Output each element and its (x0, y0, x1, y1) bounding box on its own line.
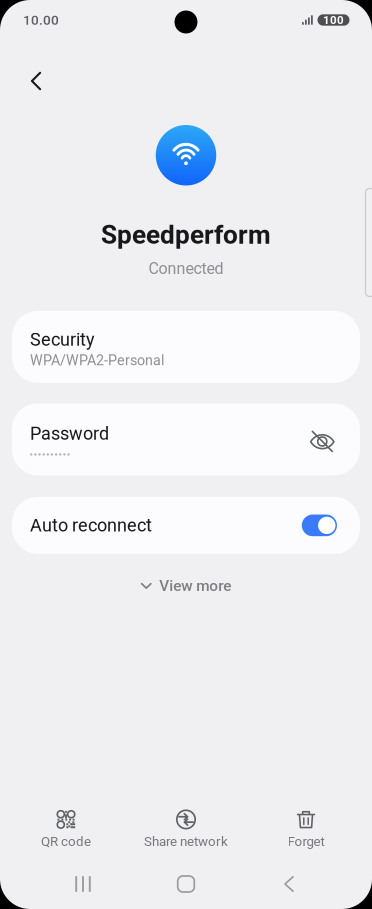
staticText: Security (30, 329, 95, 350)
button[interactable]: Share network (126, 807, 246, 853)
staticText: Speedperform (101, 219, 271, 250)
button[interactable]: Back (258, 868, 320, 900)
staticText: View more (159, 577, 231, 595)
staticText: Forget (287, 834, 324, 849)
button[interactable]: Home (155, 868, 217, 900)
staticText: WPA/WPA2-Personal (30, 352, 164, 369)
button[interactable]: Back (13, 58, 59, 104)
staticText: Auto reconnect (30, 515, 152, 536)
staticText: 10.00 (23, 12, 59, 28)
staticText: QR code (41, 834, 91, 849)
staticText: 100 (323, 13, 344, 27)
staticText: Share network (144, 834, 228, 849)
staticText: Connected (148, 259, 223, 278)
staticText: Password (30, 423, 109, 444)
button[interactable]: QR code (6, 807, 126, 853)
button[interactable]: View more (125, 569, 247, 603)
button[interactable]: Auto reconnect (12, 497, 360, 554)
button[interactable]: Password (12, 403, 360, 475)
button[interactable]: Security (12, 311, 360, 383)
button[interactable]: Recents (52, 868, 114, 900)
button[interactable]: Forget (246, 807, 366, 853)
